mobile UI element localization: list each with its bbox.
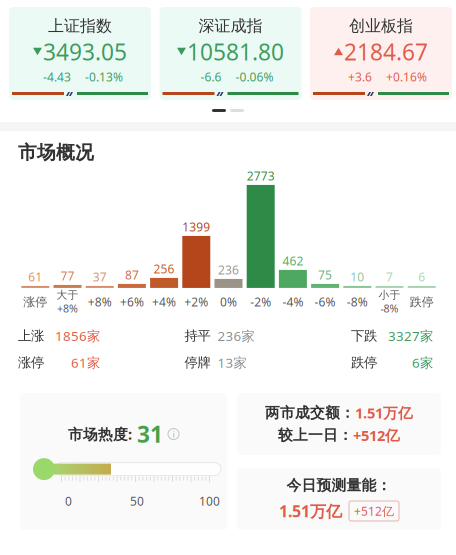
staticText: +512亿 xyxy=(354,503,394,519)
staticText: -6% xyxy=(315,294,336,310)
staticText: 跌停 xyxy=(351,354,377,371)
staticText: -6.6 xyxy=(200,69,221,85)
staticText: 下跌 xyxy=(351,328,377,344)
staticText: 1399 xyxy=(182,219,210,235)
staticText: 31 xyxy=(137,419,163,449)
staticText: 6 xyxy=(418,269,425,285)
staticText: 停牌 xyxy=(184,354,210,371)
staticText: 10581.80 xyxy=(187,37,284,67)
staticText: 10 xyxy=(350,269,364,285)
staticText: +6% xyxy=(120,294,144,310)
staticText: 1.51万亿 xyxy=(355,403,413,422)
staticText: 236 xyxy=(218,262,239,278)
staticText: +3.6 xyxy=(348,69,372,85)
staticText: 87 xyxy=(125,267,139,283)
staticText: 7 xyxy=(386,269,393,285)
staticText: 跌停 xyxy=(410,295,434,309)
staticText: +4% xyxy=(152,294,176,310)
staticText: -0.13% xyxy=(85,69,123,85)
staticText: 37 xyxy=(93,269,107,285)
staticText: 深证成指 xyxy=(198,16,262,36)
staticText: 13家 xyxy=(217,354,246,371)
staticText: 上涨 xyxy=(18,328,44,344)
staticText: 较上一日： xyxy=(278,426,353,444)
staticText: 涨停 xyxy=(23,295,47,309)
staticText: 462 xyxy=(282,253,303,269)
staticText: +0.16% xyxy=(386,69,427,85)
staticText: 1.51万亿 xyxy=(279,500,342,522)
staticText: 50 xyxy=(130,493,144,509)
staticText: -8% xyxy=(380,301,398,316)
staticText: 236家 xyxy=(217,327,254,345)
button[interactable]: 深证成指 xyxy=(159,7,301,100)
button[interactable]: 创业板指 xyxy=(310,7,452,100)
staticText: 市场热度: xyxy=(68,424,132,444)
staticText: 今日预测量能： xyxy=(286,476,391,494)
staticText: 256 xyxy=(154,261,175,277)
staticText: 2184.67 xyxy=(344,37,428,67)
staticText: 3327家 xyxy=(388,327,433,345)
button[interactable]: 市场热度: xyxy=(20,393,227,530)
staticText: 3493.05 xyxy=(43,37,127,67)
staticText: -2% xyxy=(250,294,271,310)
staticText: 100 xyxy=(199,493,220,509)
staticText: +2% xyxy=(184,294,208,310)
staticText: 6家 xyxy=(412,354,433,371)
staticText: 持平 xyxy=(184,328,210,344)
staticText: +8% xyxy=(57,301,78,316)
staticText: -8% xyxy=(347,294,368,310)
button[interactable]: 两市成交额： xyxy=(237,393,441,455)
staticText: 小于 xyxy=(378,288,400,301)
staticText: 上证指数 xyxy=(48,16,112,36)
staticText: 大于 xyxy=(56,288,78,301)
staticText: 61家 xyxy=(71,354,100,371)
staticText: -4% xyxy=(282,294,303,310)
staticText: 1856家 xyxy=(55,327,100,345)
staticText: 创业板指 xyxy=(349,16,413,36)
staticText: 0 xyxy=(65,493,72,509)
staticText: -0.06% xyxy=(235,69,273,85)
button[interactable]: 上证指数 xyxy=(9,7,151,100)
staticText: 2773 xyxy=(247,168,275,184)
staticText: 两市成交额： xyxy=(265,404,355,422)
button[interactable]: 今日预测量能： xyxy=(237,468,441,530)
staticText: -4.43 xyxy=(43,69,71,85)
staticText: 61 xyxy=(28,269,42,285)
staticText: 涨停 xyxy=(18,354,44,371)
staticText: 77 xyxy=(60,268,74,284)
staticText: i xyxy=(172,428,174,440)
staticText: 市场概况 xyxy=(18,141,94,164)
staticText: 0% xyxy=(220,294,237,310)
staticText: +8% xyxy=(88,294,112,310)
staticText: 75 xyxy=(318,267,332,283)
staticText: +512亿 xyxy=(353,425,400,445)
